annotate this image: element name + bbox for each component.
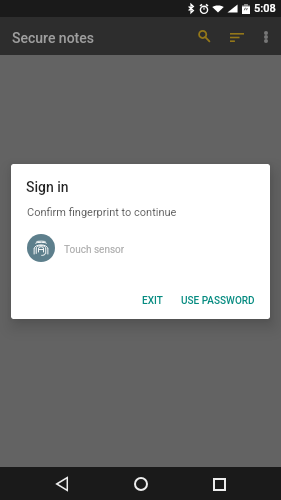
staticText: 5:08	[254, 2, 276, 15]
button[interactable]: More options	[252, 23, 280, 51]
staticText: Touch sensor	[64, 244, 125, 256]
staticText: Sign in	[26, 179, 69, 195]
button[interactable]: USE PASSWORD	[173, 290, 263, 312]
staticText: Secure notes	[12, 30, 94, 46]
button[interactable]: EXIT	[134, 290, 171, 312]
button[interactable]: Home	[126, 469, 156, 499]
button[interactable]: Sort	[222, 22, 252, 52]
button[interactable]: Back	[47, 469, 77, 499]
staticText: Confirm fingerprint to continue	[27, 206, 177, 219]
staticText: EXIT	[142, 295, 163, 307]
button[interactable]: Recents	[204, 469, 234, 499]
staticText: USE PASSWORD	[181, 295, 255, 307]
button[interactable]: Search	[188, 20, 219, 51]
